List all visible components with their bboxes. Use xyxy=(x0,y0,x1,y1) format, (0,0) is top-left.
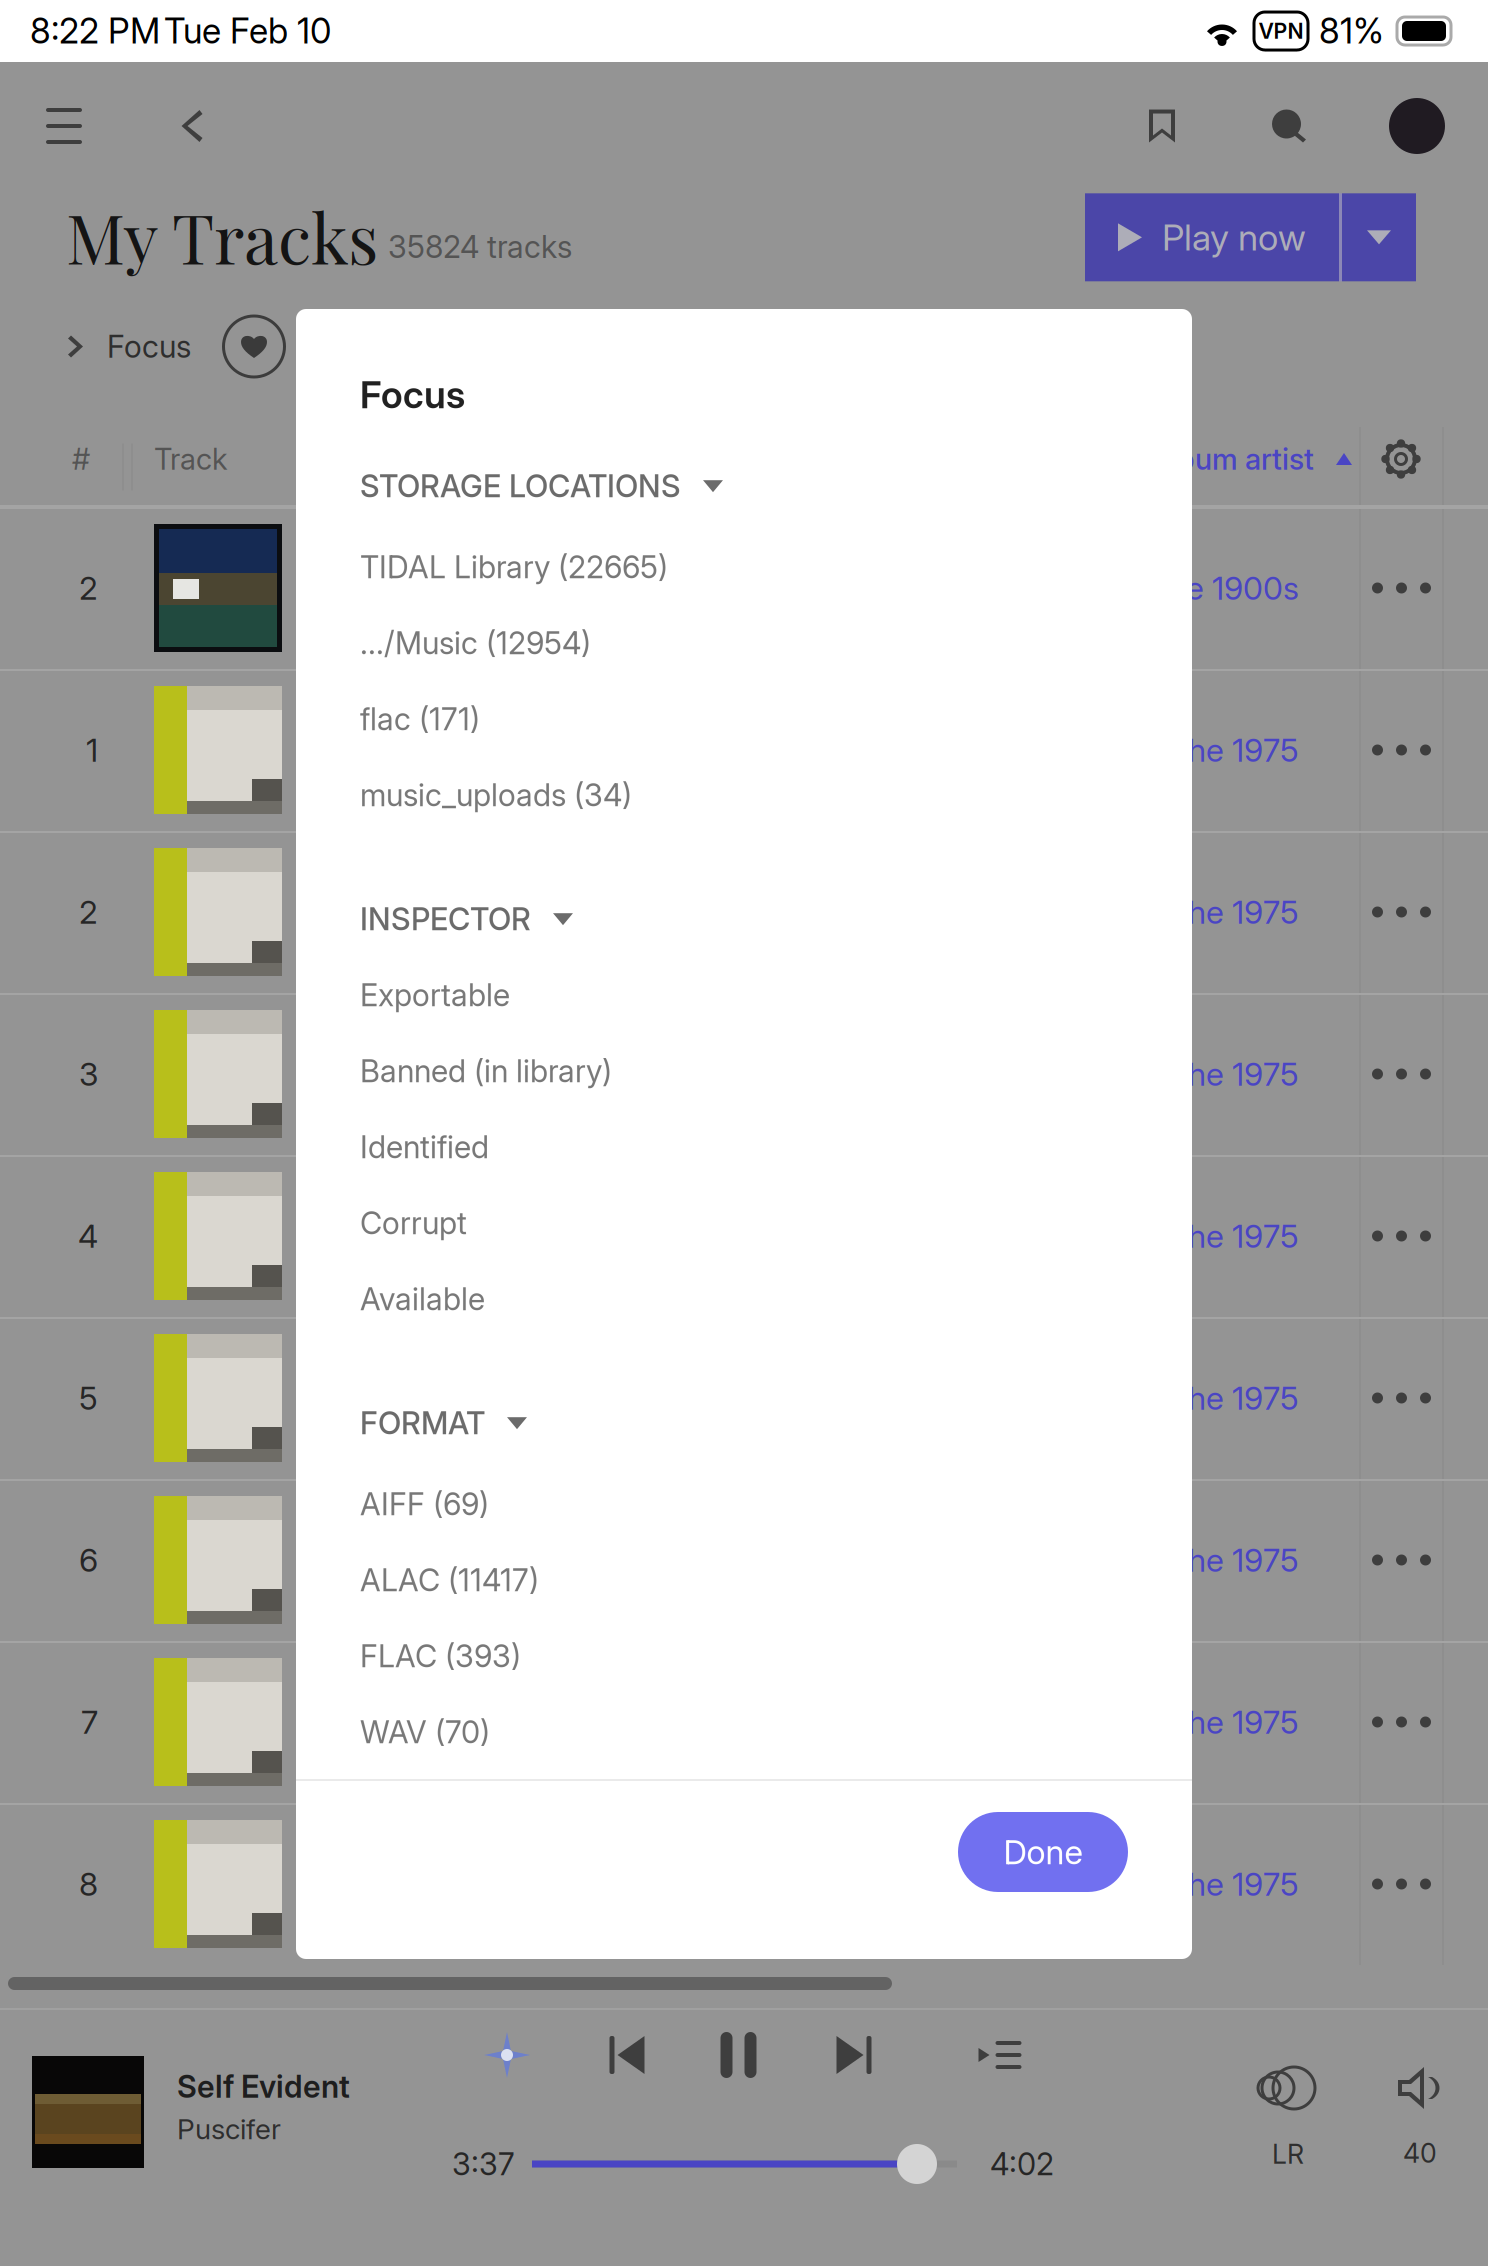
button[interactable]: .../Music (12954) xyxy=(360,605,1128,681)
staticText: The 1900s xyxy=(1148,569,1299,607)
staticText: Banned (in library) xyxy=(360,1053,612,1090)
staticText: 2 xyxy=(79,893,98,931)
staticText: STORAGE LOCATIONS xyxy=(360,468,681,505)
button[interactable]: More options xyxy=(1361,669,1442,831)
staticText: VPN xyxy=(1258,18,1303,44)
staticText: Play now xyxy=(1162,215,1306,259)
staticText: 8 xyxy=(79,1865,98,1903)
button[interactable]: Next xyxy=(826,2022,882,2088)
button[interactable]: ALAC (11417) xyxy=(360,1542,1128,1618)
staticText: 2 xyxy=(79,569,98,607)
button[interactable]: Focus xyxy=(68,309,191,383)
button[interactable]: Identified xyxy=(360,1109,1128,1185)
staticText: The 1975 xyxy=(1168,1217,1299,1255)
staticText: Track xyxy=(154,441,228,477)
button[interactable]: WAV (70) xyxy=(360,1694,1128,1770)
button[interactable]: Profile xyxy=(1382,63,1452,189)
button[interactable]: Queue xyxy=(974,2022,1026,2088)
button[interactable]: More play options xyxy=(1342,193,1416,281)
button[interactable]: Output device xyxy=(1222,2066,1354,2170)
staticText: 8:22 PM xyxy=(30,10,160,52)
button[interactable]: Search xyxy=(1254,63,1324,189)
button[interactable]: More options xyxy=(1361,507,1442,669)
staticText: The 1975 xyxy=(1168,893,1299,931)
button[interactable]: Previous xyxy=(599,2022,655,2088)
staticText: flac (171) xyxy=(360,701,480,738)
button[interactable]: More options xyxy=(1361,1317,1442,1479)
staticText: Identified xyxy=(360,1129,489,1166)
button[interactable]: AIFF (69) xyxy=(360,1466,1128,1542)
staticText: FORMAT xyxy=(360,1405,485,1442)
staticText: 7 xyxy=(81,1703,98,1741)
button[interactable]: Corrupt xyxy=(360,1185,1128,1261)
button[interactable]: Menu xyxy=(28,63,100,189)
button[interactable]: music_uploads (34) xyxy=(360,757,1128,833)
staticText: TIDAL Library (22665) xyxy=(360,549,668,586)
button[interactable]: Column settings xyxy=(1360,419,1442,499)
staticText: 4 xyxy=(78,1217,98,1255)
button[interactable]: More options xyxy=(1361,1479,1442,1641)
staticText: .../Music (12954) xyxy=(360,625,591,662)
button[interactable]: Available xyxy=(360,1261,1128,1337)
staticText: Tue Feb 10 xyxy=(164,10,331,52)
button[interactable]: Exportable xyxy=(360,957,1128,1033)
button[interactable]: More options xyxy=(1361,831,1442,993)
button[interactable]: Bookmarks xyxy=(1127,63,1197,189)
button[interactable]: Pause xyxy=(720,2022,757,2088)
button[interactable]: More options xyxy=(1361,993,1442,1155)
staticText: The 1975 xyxy=(1168,731,1299,769)
button[interactable]: Banned (in library) xyxy=(360,1033,1128,1109)
button[interactable]: More options xyxy=(1361,1803,1442,1965)
staticText: FLAC (393) xyxy=(360,1638,521,1675)
button[interactable]: Roon Radio xyxy=(468,2022,546,2088)
staticText: # xyxy=(72,441,90,477)
button[interactable]: Favorites xyxy=(217,309,291,383)
staticText: 40 xyxy=(1403,2137,1437,2169)
staticText: 81% xyxy=(1319,10,1384,52)
staticText: 1 xyxy=(86,731,98,769)
staticText: Corrupt xyxy=(360,1205,467,1242)
staticText: 3 xyxy=(79,1055,98,1093)
staticText: Focus xyxy=(107,328,191,365)
staticText: The 1975 xyxy=(1168,1379,1299,1417)
staticText: The 1975 xyxy=(1168,1865,1299,1903)
staticText: WAV (70) xyxy=(360,1714,490,1751)
staticText: AIFF (69) xyxy=(360,1486,489,1523)
button[interactable]: FORMAT xyxy=(360,1393,1128,1453)
staticText: 3:37 xyxy=(452,2145,515,2182)
button[interactable]: FLAC (393) xyxy=(360,1618,1128,1694)
staticText: Self Evident xyxy=(177,2068,350,2105)
staticText: 5 xyxy=(79,1379,98,1417)
staticText: My Tracks xyxy=(66,191,378,281)
staticText: Focus xyxy=(360,372,465,417)
button[interactable]: INSPECTOR xyxy=(360,889,1128,949)
staticText: The 1975 xyxy=(1168,1703,1299,1741)
button[interactable]: TIDAL Library (22665) xyxy=(360,529,1128,605)
staticText: Puscifer xyxy=(177,2112,281,2146)
button[interactable]: More options xyxy=(1361,1155,1442,1317)
staticText: 4:02 xyxy=(990,2145,1054,2182)
staticText: 35824 tracks xyxy=(388,228,572,265)
button[interactable]: flac (171) xyxy=(360,681,1128,757)
staticText: Exportable xyxy=(360,977,510,1014)
staticText: The 1975 xyxy=(1168,1541,1299,1579)
button[interactable]: Back xyxy=(160,63,224,189)
staticText: The 1975 xyxy=(1168,1055,1299,1093)
button[interactable]: Done xyxy=(958,1812,1128,1892)
button[interactable]: Volume xyxy=(1354,2067,1486,2169)
staticText: INSPECTOR xyxy=(360,901,531,938)
staticText: Available xyxy=(360,1281,485,1318)
staticText: music_uploads (34) xyxy=(360,777,632,814)
button[interactable]: Play now xyxy=(1085,193,1339,281)
staticText: 6 xyxy=(79,1541,98,1579)
staticText: LR xyxy=(1272,2138,1304,2170)
staticText: Album artist xyxy=(1150,441,1314,477)
staticText: ALAC (11417) xyxy=(360,1562,539,1599)
staticText: Done xyxy=(1003,1832,1082,1872)
button[interactable]: STORAGE LOCATIONS xyxy=(360,456,1128,516)
button[interactable]: More options xyxy=(1361,1641,1442,1803)
